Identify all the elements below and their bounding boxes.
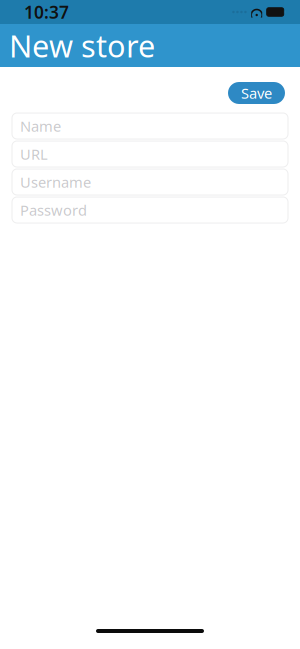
staticText: 10:37: [24, 0, 69, 23]
staticText: New store: [9, 25, 155, 66]
button[interactable]: Save: [228, 82, 285, 104]
staticText: Password: [20, 200, 87, 220]
staticText: Username: [20, 172, 91, 192]
staticText: URL: [20, 144, 48, 164]
staticText: Name: [20, 116, 61, 136]
staticText: Save: [241, 83, 272, 103]
